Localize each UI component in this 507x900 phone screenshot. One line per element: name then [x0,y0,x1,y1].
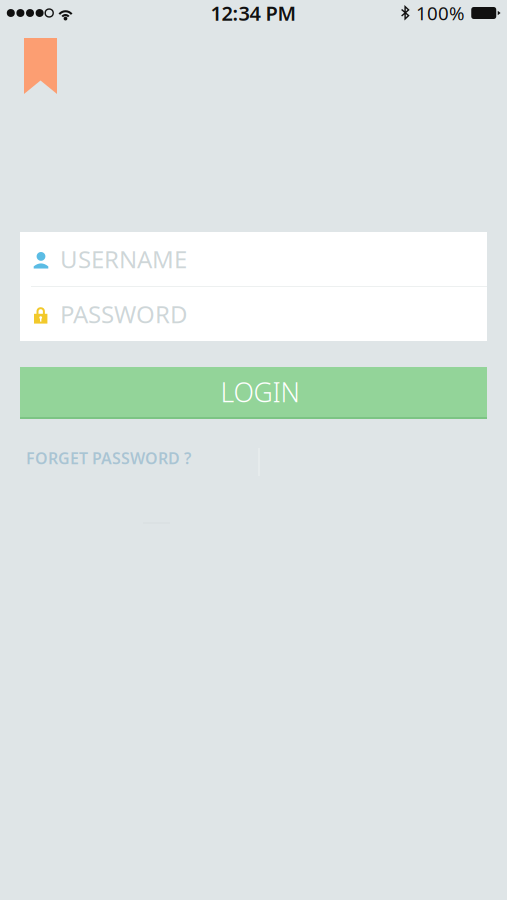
staticText: LOGIN [220,374,299,410]
button[interactable]: USERNAME [20,232,487,286]
staticText: FORGET PASSWORD ? [26,447,191,469]
button[interactable]: LOGIN [20,367,487,419]
staticText: USERNAME [60,243,187,275]
button[interactable]: PASSWORD [20,287,487,341]
staticText: PASSWORD [60,298,188,330]
staticText: 100% [416,1,465,25]
button[interactable]: FORGET PASSWORD ? [0,447,191,469]
staticText: 12:34 PM [210,0,296,26]
